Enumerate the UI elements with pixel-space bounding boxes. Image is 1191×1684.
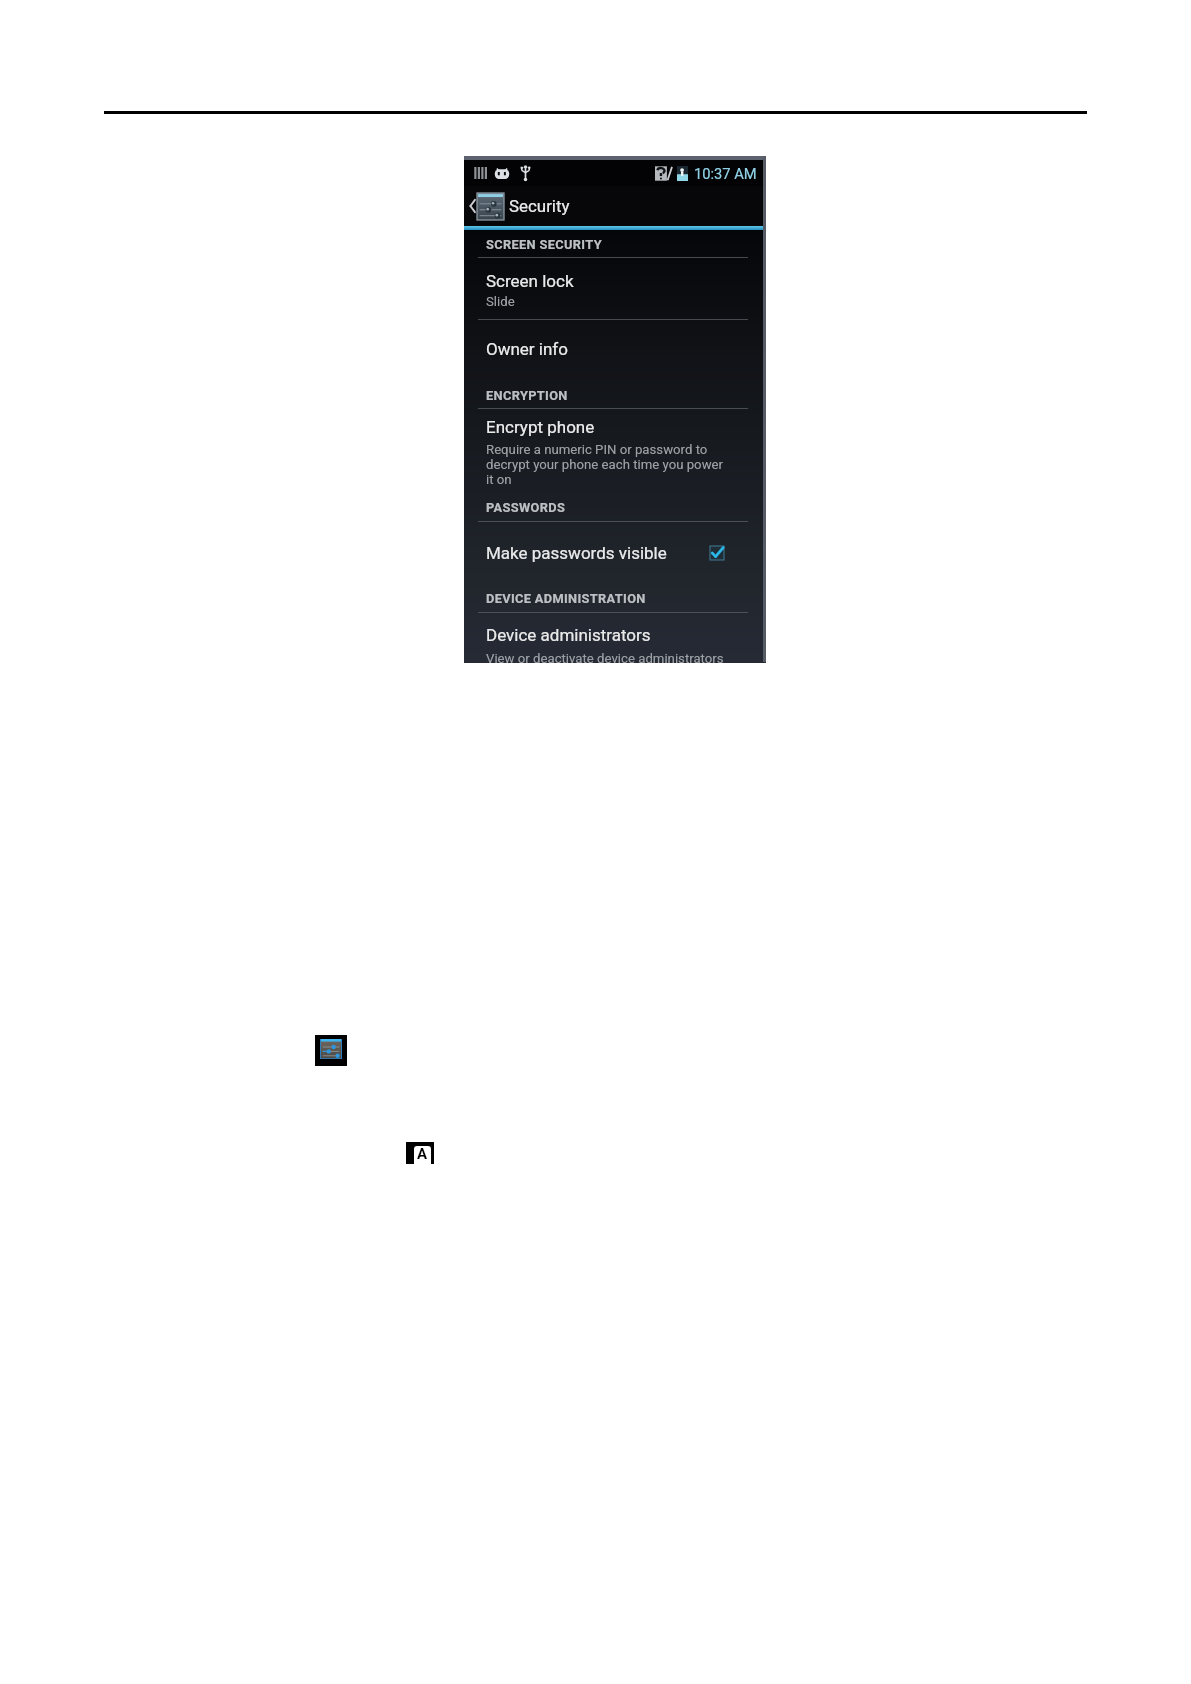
- staticText: Require a numeric PIN or password to dec…: [486, 442, 724, 487]
- staticText: DEVICE ADMINISTRATION: [486, 591, 646, 606]
- button[interactable]: Settings: [477, 193, 504, 220]
- staticText: Screen lock: [486, 271, 574, 291]
- staticText: A: [417, 1146, 428, 1163]
- button[interactable]: [464, 410, 763, 490]
- staticText: Owner info: [486, 339, 568, 359]
- button[interactable]: [464, 523, 763, 571]
- button[interactable]: [464, 321, 763, 369]
- staticText: Security: [509, 196, 570, 216]
- button[interactable]: Navigate up: [469, 199, 476, 213]
- staticText: PASSWORDS: [486, 500, 566, 515]
- staticText: Make passwords visible: [486, 543, 667, 563]
- button[interactable]: [464, 259, 763, 319]
- staticText: ENCRYPTION: [486, 388, 568, 403]
- staticText: SCREEN SECURITY: [486, 237, 602, 252]
- staticText: View or deactivate device administrators: [486, 651, 724, 666]
- staticText: Slide: [486, 294, 515, 309]
- button[interactable]: Make passwords visible: [710, 546, 724, 560]
- staticText: Encrypt phone: [486, 417, 595, 437]
- staticText: Device administrators: [486, 625, 651, 645]
- staticText: 10:37 AM: [694, 165, 757, 182]
- button[interactable]: [464, 614, 763, 663]
